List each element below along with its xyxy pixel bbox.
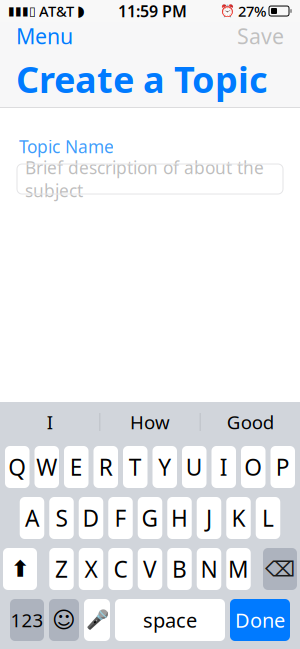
staticText: space <box>143 607 197 633</box>
button[interactable]: Menu <box>12 18 77 54</box>
staticText: How <box>130 410 170 434</box>
staticText: ⏰ <box>220 4 235 18</box>
button[interactable]: D <box>79 497 103 539</box>
button[interactable]: Q <box>5 446 29 488</box>
staticText: X <box>84 554 97 584</box>
button[interactable]: K <box>226 497 251 539</box>
staticText: Save <box>237 22 284 50</box>
button[interactable]: R <box>93 446 118 488</box>
staticText: Good <box>227 410 274 434</box>
staticText: E <box>70 452 83 482</box>
staticText: G <box>141 503 158 533</box>
staticText: S <box>55 503 67 533</box>
button[interactable]: I <box>211 446 236 488</box>
staticText: Topic Name <box>19 135 114 158</box>
staticText: 🎤 <box>85 609 108 631</box>
staticText: B <box>172 554 187 584</box>
button[interactable]: V <box>138 548 162 590</box>
staticText: P <box>276 452 290 482</box>
button[interactable]: L <box>256 497 280 539</box>
staticText: J <box>206 503 212 533</box>
button[interactable]: W <box>34 446 59 488</box>
staticText: M <box>228 554 249 584</box>
button[interactable]: H <box>167 497 192 539</box>
staticText: ▮▮▮▯ <box>8 4 36 18</box>
staticText: W <box>36 452 57 482</box>
staticText: D <box>82 503 99 533</box>
staticText: ◗ <box>77 3 85 19</box>
staticText: F <box>114 503 126 533</box>
staticText: 11:59 PM <box>118 0 187 22</box>
button[interactable]: Shift <box>3 548 37 590</box>
button[interactable]: U <box>182 446 206 488</box>
staticText: Menu <box>16 22 73 50</box>
button[interactable]: A <box>20 497 44 539</box>
button[interactable]: Emoji <box>49 599 79 641</box>
button[interactable]: Dictation <box>84 599 110 641</box>
button[interactable]: Good <box>201 402 300 442</box>
button[interactable]: B <box>167 548 192 590</box>
button[interactable]: 123 <box>10 599 44 641</box>
staticText: 123 <box>10 608 43 632</box>
staticText: 27% <box>238 1 266 21</box>
button[interactable]: S <box>49 497 74 539</box>
staticText: Create a Topic <box>16 55 268 103</box>
button[interactable]: X <box>79 548 103 590</box>
staticText: ⌫ <box>265 557 295 581</box>
button[interactable]: Done <box>230 599 290 641</box>
button[interactable]: E <box>64 446 88 488</box>
button[interactable]: M <box>226 548 251 590</box>
button[interactable]: Save <box>233 18 288 54</box>
button[interactable]: F <box>108 497 133 539</box>
staticText: ☺ <box>52 607 76 633</box>
staticText: ⬆ <box>10 556 29 582</box>
button[interactable]: Delete <box>263 548 297 590</box>
button[interactable]: space <box>115 599 225 641</box>
staticText: H <box>171 503 188 533</box>
staticText: N <box>200 554 217 584</box>
staticText: C <box>113 554 127 584</box>
staticText: O <box>244 452 262 482</box>
staticText: V <box>143 554 157 584</box>
staticText: Y <box>158 452 171 482</box>
button[interactable]: N <box>197 548 221 590</box>
staticText: Brief description of about the subject <box>25 156 264 202</box>
staticText: Done <box>235 607 285 633</box>
button[interactable]: Y <box>152 446 177 488</box>
staticText: Q <box>8 452 26 482</box>
staticText: I <box>220 452 228 482</box>
button[interactable]: C <box>108 548 133 590</box>
staticText: R <box>99 452 113 482</box>
staticText: L <box>262 503 274 533</box>
staticText: K <box>231 503 245 533</box>
button[interactable]: T <box>123 446 147 488</box>
button[interactable]: Z <box>49 548 74 590</box>
button[interactable]: I <box>0 402 99 442</box>
staticText: U <box>186 452 203 482</box>
staticText: AT&T <box>39 1 74 21</box>
staticText: Z <box>55 554 68 584</box>
button[interactable]: P <box>270 446 295 488</box>
button[interactable]: J <box>197 497 221 539</box>
staticText: A <box>25 503 39 533</box>
staticText: T <box>129 452 142 482</box>
button[interactable]: O <box>241 446 265 488</box>
button[interactable]: How <box>100 402 200 442</box>
staticText: I <box>47 410 53 434</box>
button[interactable]: G <box>138 497 162 539</box>
